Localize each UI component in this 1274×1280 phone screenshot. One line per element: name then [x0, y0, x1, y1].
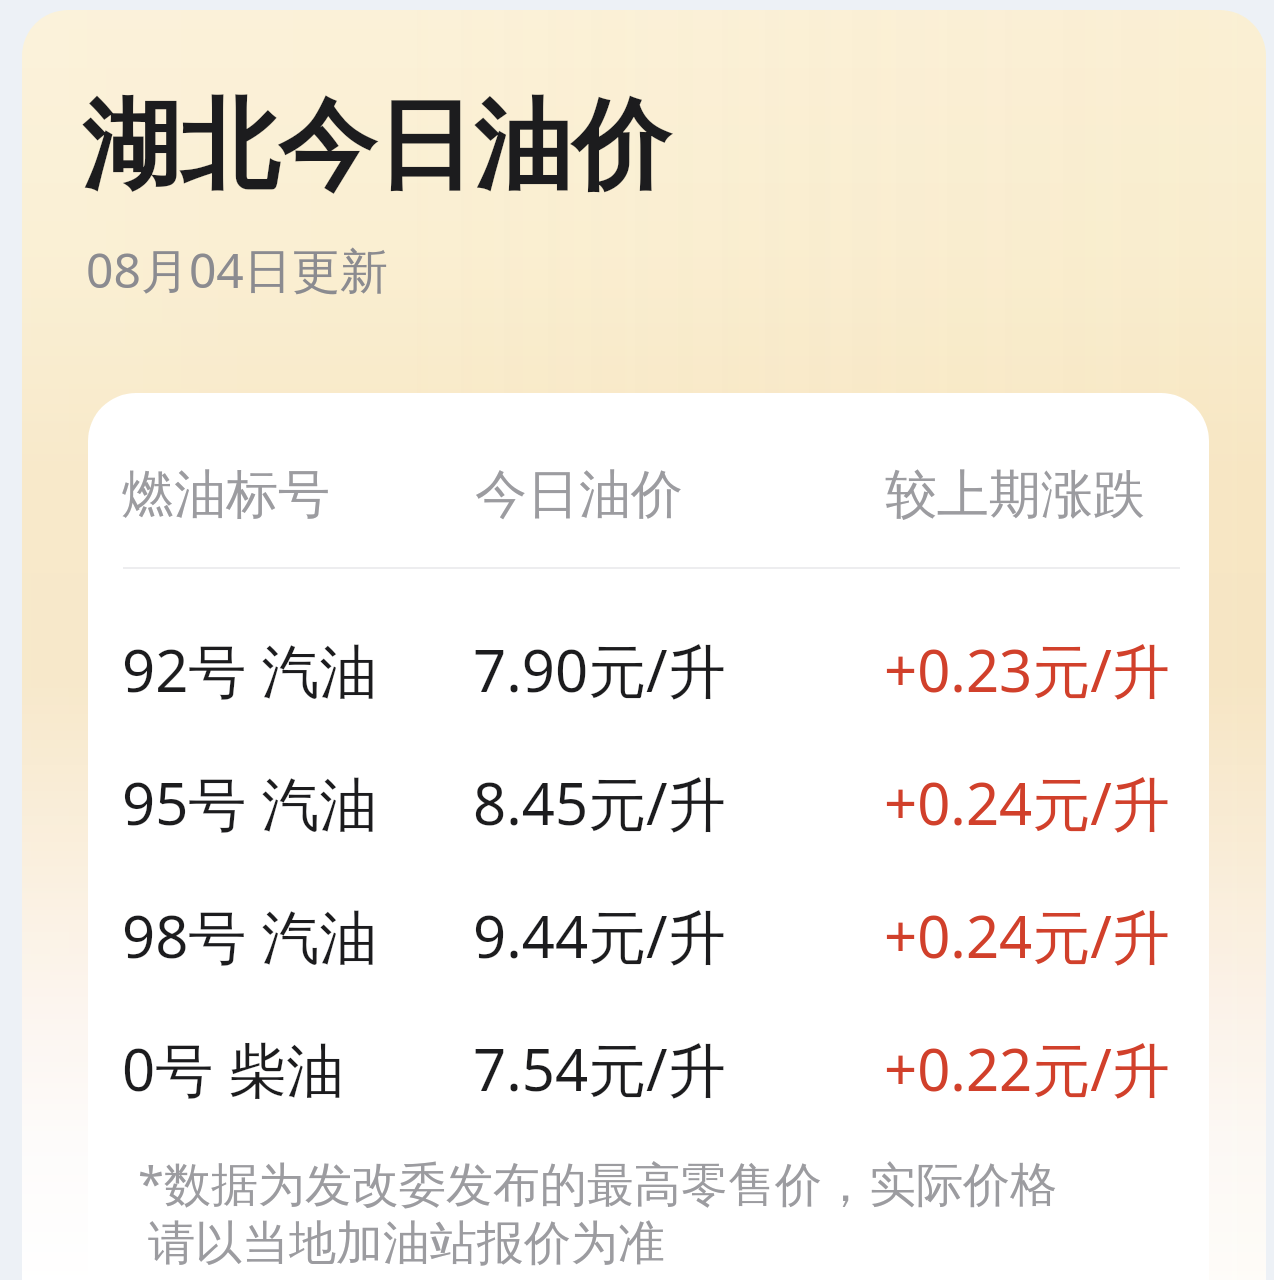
button[interactable]: 9.44元/升 [473, 896, 726, 975]
button[interactable]: 92号 汽油 [122, 630, 378, 709]
button[interactable]: 0号 柴油 [122, 1029, 345, 1108]
button[interactable]: 燃油标号 [122, 462, 330, 528]
button[interactable]: +0.22元/升 [884, 1029, 1170, 1108]
button[interactable]: 今日油价 [475, 462, 683, 528]
button[interactable]: +0.23元/升 [884, 630, 1170, 709]
button[interactable]: +0.24元/升 [884, 896, 1170, 975]
button[interactable]: 95号 汽油 [122, 763, 378, 842]
staticText: *数据为发改委发布的最高零售价，实际价格 [138, 1151, 1057, 1215]
staticText: 08月04日更新 [86, 237, 388, 303]
button[interactable]: 7.54元/升 [473, 1029, 726, 1108]
staticText: 请以当地加油站报价为准 [148, 1214, 665, 1273]
button[interactable]: 7.90元/升 [473, 630, 726, 709]
button[interactable]: 98号 汽油 [122, 896, 378, 975]
button[interactable] [88, 393, 1209, 1280]
button[interactable]: 8.45元/升 [473, 763, 726, 842]
staticText: 湖北今日油价 [82, 85, 670, 208]
button[interactable]: 较上期涨跌 [885, 462, 1145, 528]
button[interactable]: +0.24元/升 [884, 763, 1170, 842]
